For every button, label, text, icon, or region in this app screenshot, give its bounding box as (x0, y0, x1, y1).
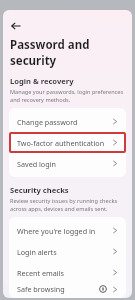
button[interactable]: Where you're logged in (9, 220, 126, 241)
button[interactable]: Safe browsing (9, 283, 126, 295)
button[interactable]: Two-factor authentication (9, 132, 126, 153)
staticText: Saved login (17, 159, 112, 169)
staticText: Login & recovery (10, 76, 74, 86)
staticText: Manage your passwords, login preferences… (10, 88, 126, 103)
staticText: Review security issues by running checks… (10, 197, 126, 212)
button[interactable]: Change password (9, 111, 126, 132)
button[interactable]: Login alerts (9, 241, 126, 262)
staticText: Login alerts (17, 247, 112, 257)
staticText: Two-factor authentication (17, 138, 112, 148)
staticText: Where you're logged in (17, 226, 112, 236)
staticText: Change password (17, 117, 112, 127)
staticText: Security checks (10, 185, 69, 195)
button[interactable]: Back (6, 16, 26, 36)
button[interactable]: Saved login (9, 153, 126, 174)
staticText: Safe browsing (17, 284, 99, 294)
staticText: Password and security (10, 37, 132, 69)
button[interactable]: Recent emails (9, 262, 126, 283)
staticText: Recent emails (17, 268, 112, 278)
